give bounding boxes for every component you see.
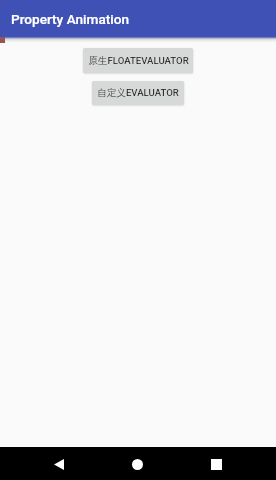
staticText: 原生FLOATEVALUATOR <box>88 55 189 67</box>
button[interactable]: 原生FLOATEVALUATOR <box>83 48 193 73</box>
staticText: 自定义EVALUATOR <box>97 87 179 99</box>
button[interactable]: Home <box>125 452 149 476</box>
button[interactable]: Recent apps <box>204 452 228 476</box>
button[interactable]: 自定义EVALUATOR <box>92 81 184 105</box>
staticText: Property Animation <box>11 11 130 27</box>
button[interactable]: Back <box>47 452 71 476</box>
